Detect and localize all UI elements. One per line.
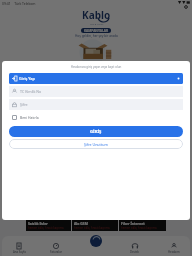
staticText: Kablo bbox=[82, 8, 111, 22]
button[interactable]: Beni Hatırla bbox=[11, 114, 40, 121]
button[interactable]: Hesabım bbox=[161, 242, 187, 255]
staticText: Beni Hatırla bbox=[20, 115, 39, 120]
staticText: Fiber İnternet bbox=[121, 221, 145, 226]
staticText: Destek bbox=[130, 250, 140, 254]
staticText: i n t e r n e t bbox=[90, 22, 104, 25]
staticText: hemen tıkla, fırsatı kaçırma bbox=[28, 226, 64, 230]
button[interactable]: Şifre bbox=[9, 99, 183, 110]
staticText: Hesabınıza giriş yapın veya kayıt olun bbox=[2, 65, 190, 69]
staticText: Hesabım bbox=[168, 250, 180, 254]
staticText: Faturalar bbox=[50, 250, 62, 254]
staticText: Hoş geldin, her şey bir arada bbox=[75, 34, 118, 38]
button[interactable]: Alo GSM bbox=[72, 219, 118, 231]
button[interactable]: GİRİŞ bbox=[9, 126, 183, 137]
button[interactable]: Fiber İnternet bbox=[119, 219, 166, 231]
staticText: TC Kimlik No bbox=[20, 89, 42, 94]
staticText: GİRİŞ bbox=[90, 129, 102, 135]
button[interactable]: Menu bbox=[90, 235, 102, 247]
button[interactable]: Ana Sayfa bbox=[6, 242, 32, 255]
button[interactable]: Faturalar bbox=[43, 242, 69, 255]
button[interactable]: Giriş Yap bbox=[9, 73, 183, 84]
button[interactable]: KAMPANYALAR bbox=[81, 28, 111, 33]
button[interactable]: Destek bbox=[122, 242, 148, 255]
button[interactable]: Satılık Evler bbox=[26, 219, 71, 231]
button[interactable]: Şifre Unuttum bbox=[9, 139, 183, 149]
staticText: Ana Sayfa bbox=[13, 250, 26, 254]
button[interactable]: TC Kimlik No bbox=[9, 86, 183, 97]
staticText: Şifre Unuttum bbox=[84, 142, 108, 147]
staticText: KAMPANYALAR bbox=[84, 29, 109, 33]
staticText: Alo GSM bbox=[74, 221, 88, 226]
staticText: Satılık Evler bbox=[28, 221, 48, 226]
staticText: hemen tıkla, fırsatı kaçırma bbox=[121, 226, 157, 230]
staticText: hemen tıkla, fırsatı kaçırma bbox=[74, 226, 110, 230]
staticText: Şifre bbox=[20, 102, 28, 107]
staticText: 09:41 Türk Telekom bbox=[2, 1, 36, 6]
staticText: Giriş Yap bbox=[19, 76, 35, 81]
